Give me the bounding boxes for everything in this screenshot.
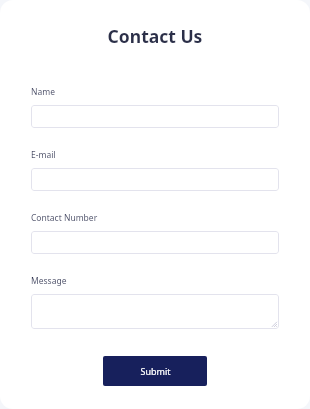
button[interactable]: Contact Number input field [31, 231, 279, 254]
button[interactable]: Name input field [31, 105, 279, 128]
button[interactable]: Submit [103, 356, 207, 386]
staticText: Contact Us [0, 24, 310, 48]
button[interactable]: Message input field [31, 294, 279, 329]
staticText: Message [31, 275, 67, 287]
staticText: Submit [140, 365, 171, 377]
button[interactable]: E-mail input field [31, 168, 279, 191]
staticText: E-mail [31, 149, 56, 161]
staticText: Contact Number [31, 212, 98, 224]
staticText: Name [31, 86, 55, 98]
